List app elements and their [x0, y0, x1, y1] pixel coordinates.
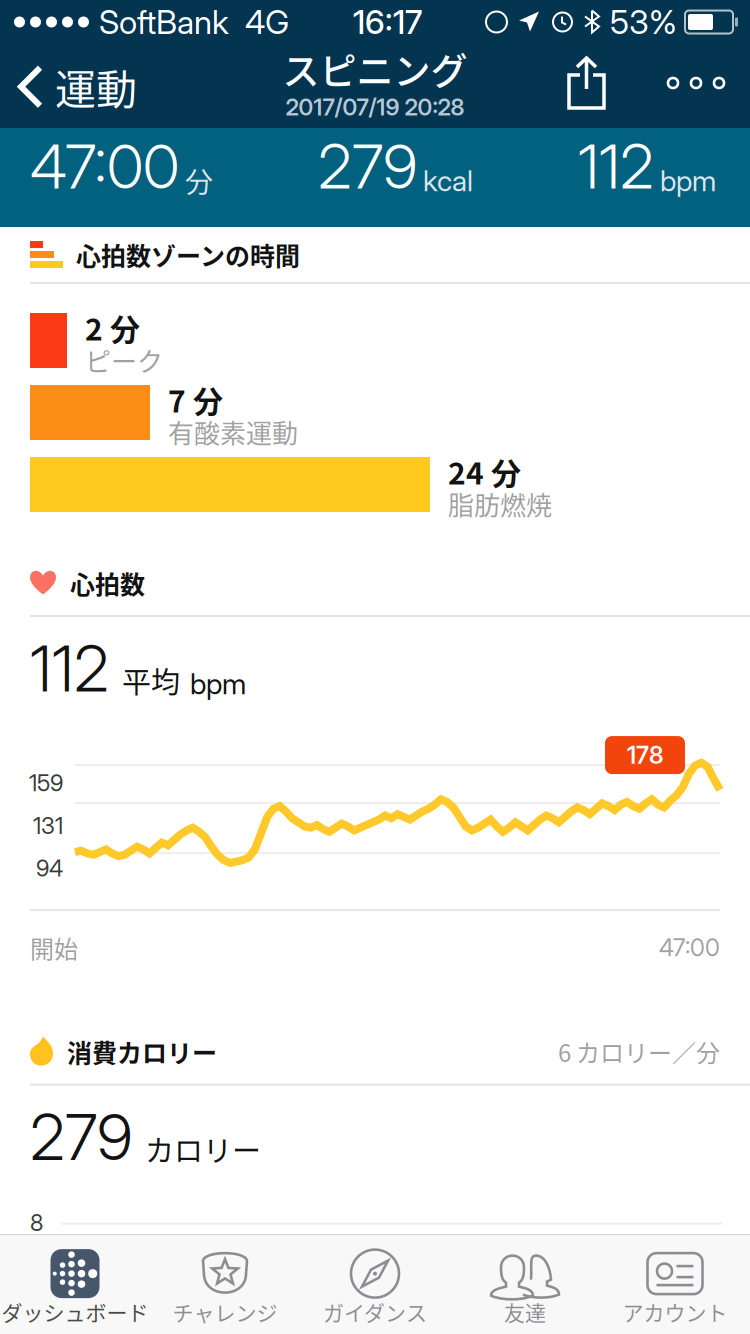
staticText: 2 分: [85, 310, 140, 345]
staticText: アカウント: [622, 1298, 727, 1325]
staticText: 消費カロリー: [67, 1033, 217, 1070]
staticText: 279: [30, 1103, 132, 1171]
staticText: 心拍数: [70, 565, 145, 601]
button[interactable]: 友達: [450, 1235, 600, 1334]
button[interactable]: 運動: [0, 44, 137, 113]
staticText: 7 分: [168, 382, 223, 417]
staticText: 脂肪燃焼: [448, 489, 552, 519]
staticText: チャレンジ: [172, 1298, 277, 1325]
staticText: 運動: [55, 60, 137, 113]
staticText: 94: [36, 854, 63, 882]
button[interactable]: チャレンジ: [150, 1235, 300, 1334]
staticText: 6 カロリー／分: [558, 1034, 720, 1069]
staticText: 8: [30, 1209, 43, 1236]
staticText: 16:17: [353, 2, 422, 42]
button[interactable]: ガイダンス: [300, 1235, 450, 1334]
staticText: 分: [185, 164, 213, 197]
staticText: 53%: [610, 2, 677, 42]
staticText: 2017/07/19 20:28: [285, 93, 464, 121]
staticText: ガイダンス: [323, 1298, 427, 1325]
staticText: 112: [578, 135, 654, 198]
staticText: 47:00: [30, 135, 179, 198]
staticText: 開始: [30, 930, 78, 965]
staticText: 178: [627, 741, 663, 770]
staticText: 279: [318, 135, 417, 198]
staticText: 24 分: [448, 454, 521, 489]
button[interactable]: アカウント: [600, 1235, 750, 1334]
button[interactable]: Share: [567, 44, 668, 110]
staticText: 4G: [245, 2, 289, 42]
staticText: 有酸素運動: [168, 417, 298, 447]
staticText: 心拍数ゾーンの時間: [76, 236, 300, 273]
staticText: ダッシュボード: [1, 1298, 148, 1325]
staticText: bpm: [660, 166, 716, 196]
staticText: カロリー: [145, 1131, 261, 1168]
button[interactable]: ダッシュボード: [0, 1235, 150, 1334]
staticText: SoftBank: [99, 2, 229, 42]
staticText: ピーク: [85, 345, 163, 375]
staticText: bpm: [190, 668, 246, 699]
staticText: 47:00: [659, 933, 720, 962]
staticText: 159: [29, 769, 63, 797]
staticText: 友達: [504, 1298, 546, 1325]
staticText: 平均: [122, 662, 180, 699]
button[interactable]: More options: [668, 44, 750, 110]
staticText: 112: [30, 635, 109, 702]
staticText: 131: [33, 812, 63, 839]
staticText: kcal: [423, 166, 473, 196]
staticText: スピニング: [282, 45, 467, 93]
